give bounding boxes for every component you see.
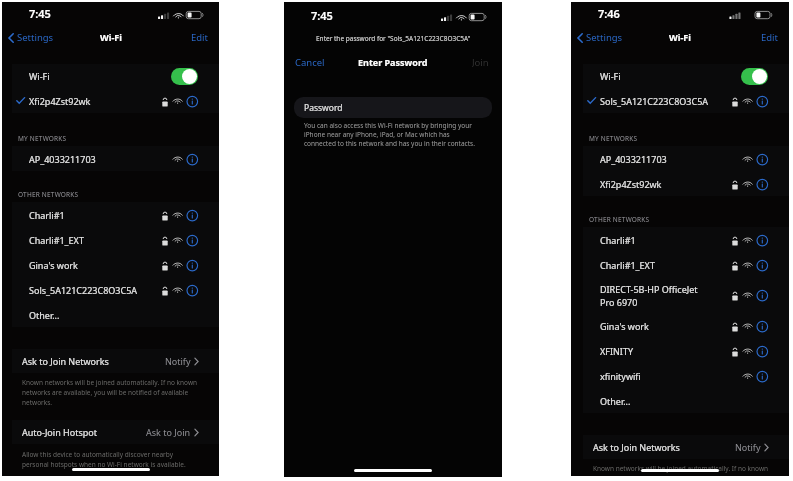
staticText: xfinitywifi: [600, 370, 641, 382]
button[interactable]: XFINITY: [583, 338, 789, 363]
button[interactable]: Xfi2p4Zst92wk: [12, 88, 219, 113]
staticText: Cancel: [295, 56, 325, 67]
staticText: Enter Password: [358, 56, 428, 67]
button[interactable]: Settings: [571, 31, 631, 44]
staticText: Enter the password for "Sols_5A121C223C8…: [316, 34, 471, 43]
button[interactable]: Edit: [751, 31, 789, 44]
staticText: Join: [472, 56, 489, 67]
button[interactable]: Settings: [2, 31, 62, 44]
staticText: Xfi2p4Zst92wk: [29, 95, 91, 107]
staticText: Edit: [191, 31, 209, 44]
button[interactable]: Cancel: [284, 56, 335, 67]
button[interactable]: DIRECT-5B-HP OfficeJet: [583, 277, 789, 313]
staticText: Ask to Join: [146, 426, 191, 438]
staticText: Wi-Fi: [600, 70, 621, 82]
button[interactable]: Xfi2p4Zst92wk: [583, 171, 789, 196]
staticText: Other...: [600, 395, 631, 407]
staticText: Other...: [29, 309, 60, 321]
staticText: Known networks will be joined automatica…: [593, 464, 773, 476]
button[interactable]: AP_4033211703: [583, 146, 789, 171]
staticText: Gina's work: [600, 320, 649, 332]
button[interactable]: xfinitywifi: [583, 363, 789, 388]
staticText: Ask to Join Networks: [593, 441, 680, 453]
button[interactable]: Ask to Join Networks: [583, 435, 789, 459]
staticText: Auto-Join Hotspot: [22, 426, 97, 438]
button[interactable]: Charli#1_EXT: [12, 227, 219, 252]
staticText: Settings: [17, 31, 54, 44]
button[interactable]: Edit: [181, 31, 219, 44]
staticText: Charli#1: [29, 209, 65, 221]
staticText: Xfi2p4Zst92wk: [600, 178, 662, 190]
staticText: Charli#1: [600, 234, 636, 246]
staticText: Ask to Join Networks: [22, 355, 109, 367]
button[interactable]: AP_4033211703: [12, 146, 219, 171]
staticText: MY NETWORKS: [18, 134, 67, 143]
staticText: Wi-Fi: [29, 70, 50, 82]
button[interactable]: Other...: [583, 388, 789, 413]
button[interactable]: Wi-Fi toggle: [741, 68, 768, 85]
button[interactable]: Charli#1: [583, 227, 789, 252]
staticText: Wi-Fi: [100, 31, 122, 43]
button[interactable]: Charli#1_EXT: [583, 252, 789, 277]
staticText: OTHER NETWORKS: [18, 190, 79, 199]
staticText: XFINITY: [600, 345, 633, 357]
staticText: Sols_5A121C223C8O3C5A: [600, 95, 709, 107]
staticText: Pro 6970: [600, 296, 638, 308]
button[interactable]: Wi-Fi toggle: [171, 68, 198, 85]
staticText: Notify: [735, 441, 761, 453]
staticText: Settings: [586, 31, 623, 44]
button[interactable]: Wi-Fi: [583, 64, 789, 88]
staticText: Gina's work: [29, 259, 78, 271]
staticText: 7:45: [29, 6, 51, 21]
staticText: Sols_5A121C223C8O3C5A: [29, 284, 138, 296]
staticText: OTHER NETWORKS: [589, 215, 650, 224]
staticText: 7:46: [598, 6, 620, 21]
staticText: Edit: [761, 31, 779, 44]
staticText: 7:45: [311, 8, 333, 23]
button[interactable]: Gina's work: [583, 313, 789, 338]
button[interactable]: Sols_5A121C223C8O3C5A: [12, 277, 219, 302]
staticText: AP_4033211703: [600, 153, 667, 165]
button[interactable]: Password: [294, 97, 492, 118]
staticText: Charli#1_EXT: [600, 259, 655, 271]
button[interactable]: Sols_5A121C223C8O3C5A: [583, 88, 789, 113]
button[interactable]: Auto-Join Hotspot: [12, 420, 219, 444]
button[interactable]: Ask to Join Networks: [12, 349, 219, 373]
staticText: Password: [304, 102, 343, 114]
staticText: Wi-Fi: [669, 31, 691, 43]
staticText: Notify: [165, 355, 191, 367]
button[interactable]: Charli#1: [12, 202, 219, 227]
staticText: Charli#1_EXT: [29, 234, 84, 246]
staticText: Known networks will be joined automatica…: [22, 378, 203, 407]
staticText: DIRECT-5B-HP OfficeJet: [600, 283, 698, 295]
staticText: AP_4033211703: [29, 153, 96, 165]
staticText: Allow this device to automatically disco…: [22, 450, 191, 469]
button[interactable]: Wi-Fi: [12, 64, 219, 88]
button[interactable]: Join: [462, 56, 502, 67]
staticText: MY NETWORKS: [589, 134, 638, 143]
staticText: You can also access this Wi-Fi network b…: [304, 121, 478, 148]
button[interactable]: Gina's work: [12, 252, 219, 277]
button[interactable]: Other...: [12, 302, 219, 327]
